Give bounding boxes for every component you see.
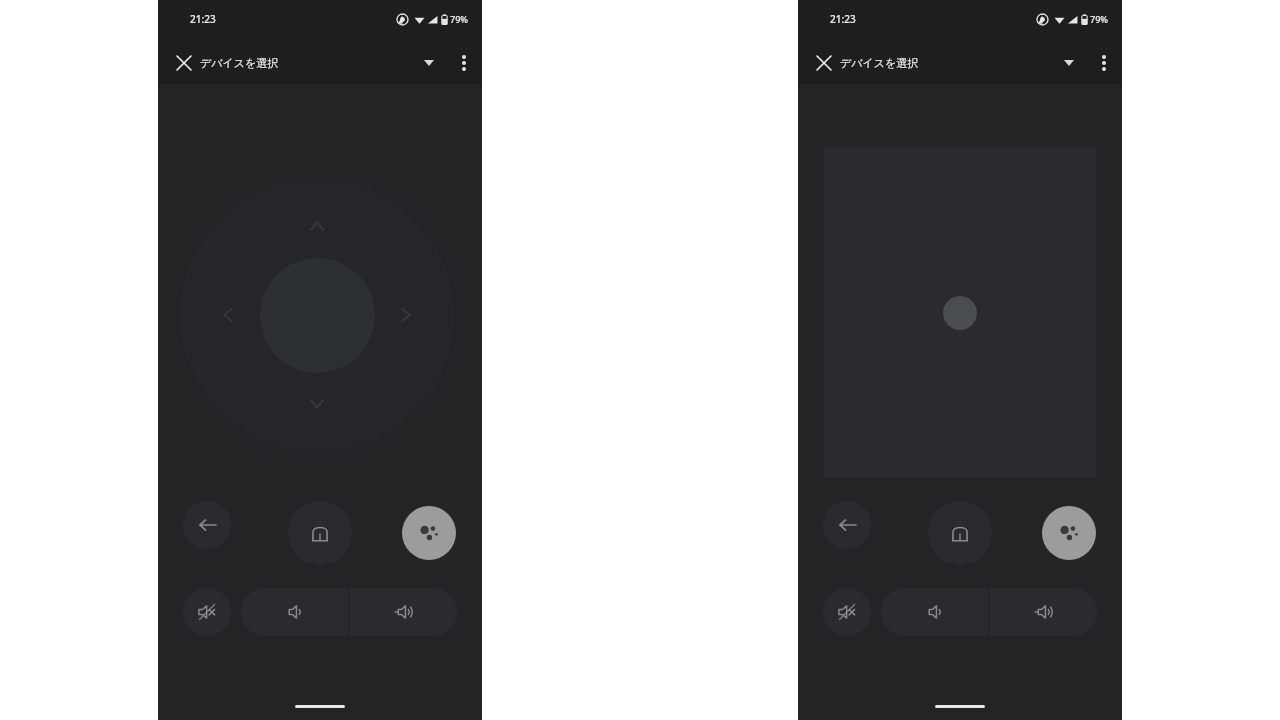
staticText: 79% xyxy=(1090,13,1108,25)
button[interactable]: Assistant xyxy=(402,506,456,560)
staticText: 21:23 xyxy=(830,12,856,26)
button[interactable]: Volume up xyxy=(990,588,1097,636)
button[interactable]: Assistant xyxy=(1042,506,1096,560)
staticText: デバイスを選択 xyxy=(840,56,919,70)
button[interactable]: Select xyxy=(260,258,375,373)
button[interactable]: More options xyxy=(446,45,482,81)
button[interactable]: Home xyxy=(928,501,992,565)
button[interactable]: Home xyxy=(288,501,352,565)
button[interactable]: Expand device list xyxy=(412,46,446,80)
button[interactable]: Expand device list xyxy=(1052,46,1086,80)
staticText: デバイスを選択 xyxy=(200,56,279,70)
button[interactable]: Volume up xyxy=(350,588,457,636)
button[interactable]: Direction pad xyxy=(180,178,454,452)
button[interactable]: Back xyxy=(183,501,231,549)
staticText: 21:23 xyxy=(190,12,216,26)
button[interactable]: Back xyxy=(823,501,871,549)
button[interactable]: Close xyxy=(806,45,842,81)
button[interactable]: More options xyxy=(1086,45,1122,81)
staticText: 79% xyxy=(450,13,468,25)
button[interactable]: Volume down xyxy=(881,588,988,636)
button[interactable]: Mute xyxy=(823,588,871,636)
button[interactable]: Volume down xyxy=(241,588,348,636)
button[interactable]: Mute xyxy=(183,588,231,636)
button[interactable]: Close xyxy=(166,45,202,81)
button[interactable]: Touchpad xyxy=(824,147,1096,478)
